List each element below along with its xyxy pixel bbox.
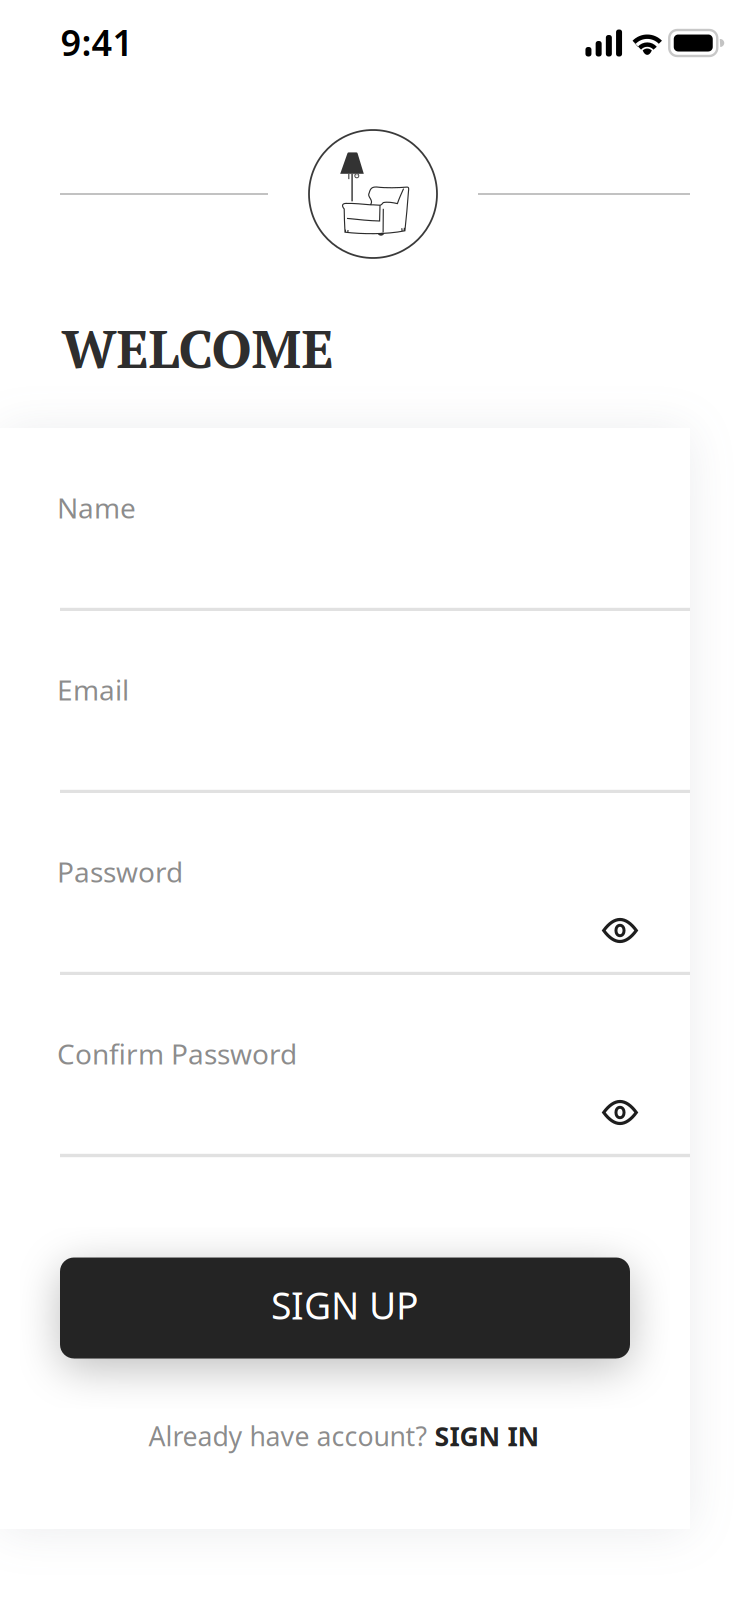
button[interactable]: Already have account? — [148, 1418, 539, 1454]
staticText: Password — [57, 853, 183, 890]
button[interactable]: Show Password — [590, 906, 650, 955]
button[interactable]: SIGN UP — [60, 1257, 630, 1358]
staticText: SIGN IN — [434, 1418, 539, 1454]
button[interactable]: Confirm Password — [60, 975, 690, 1157]
button[interactable]: Password — [60, 793, 690, 975]
staticText: Name — [57, 489, 136, 526]
button[interactable]: Email — [60, 611, 690, 793]
button[interactable]: Name — [60, 429, 690, 611]
staticText: SIGN UP — [271, 1280, 419, 1330]
staticText: Email — [57, 671, 129, 708]
staticText: Already have account? — [148, 1418, 434, 1454]
staticText: 9:41 — [60, 18, 133, 66]
button[interactable]: Show Confirm Password — [590, 1088, 650, 1137]
staticText: WELCOME — [61, 313, 333, 383]
staticText: Confirm Password — [57, 1035, 297, 1072]
